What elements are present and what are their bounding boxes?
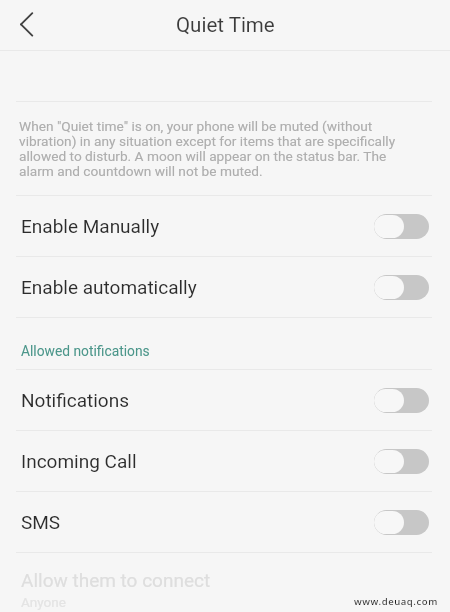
staticText: Allow them to connect [21, 569, 211, 591]
button[interactable]: Enable Manually [0, 196, 450, 256]
staticText: SMS [21, 511, 61, 533]
staticText: www.deuaq.com [354, 595, 438, 608]
staticText: Enable automatically [21, 276, 197, 298]
button[interactable]: Notifications [0, 370, 450, 430]
button[interactable]: Incoming Call [0, 431, 450, 491]
staticText: Incoming Call [21, 450, 137, 472]
staticText: Allowed notifications [21, 343, 150, 359]
staticText: Anyone [21, 594, 66, 610]
button[interactable]: Enable automatically [0, 257, 450, 317]
staticText: Quiet Time [176, 13, 275, 37]
staticText: When "Quiet time" is on, your phone will… [19, 118, 417, 180]
staticText: Notifications [21, 389, 130, 411]
button[interactable]: Allowed notifications [0, 318, 450, 369]
button[interactable]: SMS [0, 492, 450, 552]
button[interactable]: Allow them to connect [0, 553, 450, 612]
staticText: Enable Manually [21, 215, 160, 237]
button[interactable]: Back [0, 0, 53, 50]
